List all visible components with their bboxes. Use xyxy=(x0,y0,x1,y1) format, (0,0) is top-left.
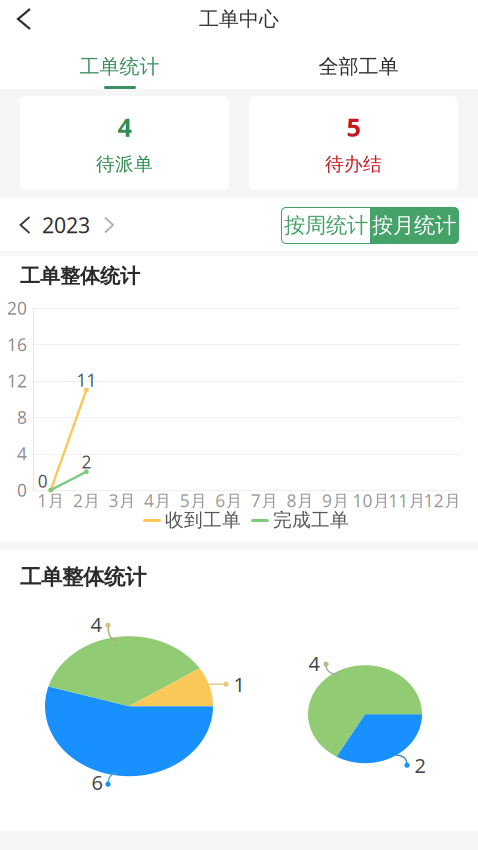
staticText: 2023 xyxy=(42,211,90,239)
button[interactable]: 按周统计 xyxy=(282,208,370,243)
staticText: 2 xyxy=(81,450,91,473)
staticText: 1 xyxy=(233,671,244,697)
staticText: 5月 xyxy=(180,489,207,512)
staticText: 全部工单 xyxy=(318,54,398,79)
staticText: 工单整体统计 xyxy=(20,264,140,288)
staticText: 12 xyxy=(7,369,27,392)
staticText: 待派单 xyxy=(96,153,153,176)
button[interactable]: 按月统计 xyxy=(370,208,458,243)
staticText: 工单统计 xyxy=(79,54,159,79)
staticText: 11 xyxy=(76,368,96,391)
staticText: 8 xyxy=(17,406,27,429)
staticText: 3月 xyxy=(108,489,135,512)
staticText: 10月 xyxy=(352,489,389,512)
staticText: 0 xyxy=(38,469,48,492)
staticText: 按周统计 xyxy=(284,212,368,239)
staticText: 5 xyxy=(346,110,360,144)
staticText: 7月 xyxy=(251,489,278,512)
staticText: 4 xyxy=(308,650,319,676)
staticText: 4 xyxy=(90,611,101,637)
staticText: 12月 xyxy=(424,489,461,512)
button[interactable]: 全部工单 xyxy=(239,38,478,89)
button[interactable]: Back xyxy=(0,0,48,38)
button[interactable]: Previous year xyxy=(5,204,45,246)
staticText: 待办结 xyxy=(325,153,382,176)
staticText: 收到工单 xyxy=(165,508,241,531)
button[interactable]: Next year xyxy=(92,204,126,246)
staticText: 2 xyxy=(414,752,425,778)
button[interactable]: 工单统计 xyxy=(0,38,239,89)
button[interactable]: 4 xyxy=(20,96,229,190)
staticText: 6月 xyxy=(215,489,242,512)
staticText: 工单中心 xyxy=(199,7,279,31)
button[interactable]: 5 xyxy=(249,96,458,190)
staticText: 9月 xyxy=(322,489,349,512)
staticText: 工单整体统计 xyxy=(20,564,146,590)
staticText: 4月 xyxy=(144,489,171,512)
staticText: 完成工单 xyxy=(273,508,349,531)
staticText: 0 xyxy=(17,478,27,501)
staticText: 20 xyxy=(7,296,27,319)
staticText: 6 xyxy=(91,769,102,795)
staticText: 11月 xyxy=(388,489,425,512)
staticText: 2月 xyxy=(73,489,100,512)
staticText: 8月 xyxy=(286,489,313,512)
staticText: 16 xyxy=(7,333,27,356)
staticText: 4 xyxy=(17,442,27,465)
staticText: 按月统计 xyxy=(372,212,456,239)
staticText: 1月 xyxy=(37,489,64,512)
staticText: 4 xyxy=(117,110,131,144)
